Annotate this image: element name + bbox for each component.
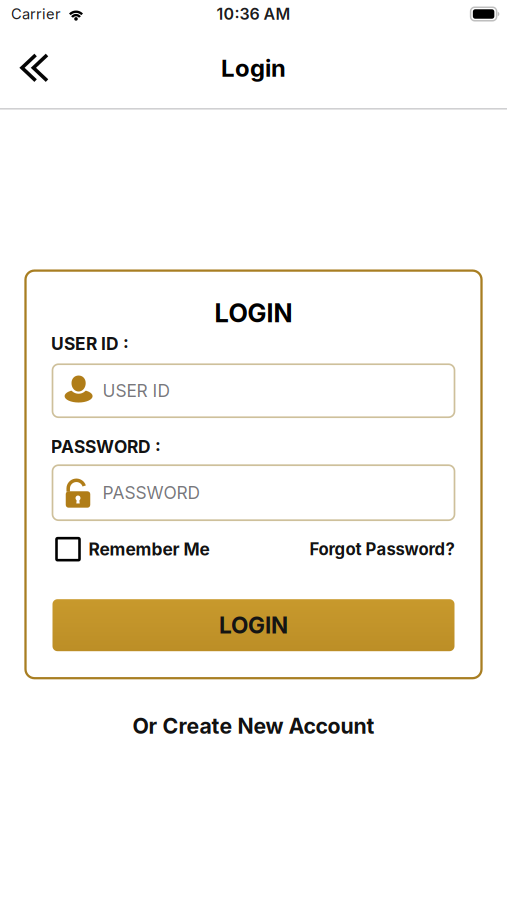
staticText: Carrier [11,5,61,23]
staticText: PASSWORD : [51,436,161,457]
staticText: Login [221,53,286,82]
button[interactable]: Or Create New Account [122,707,384,745]
staticText: LOGIN [219,611,288,639]
button[interactable]: Remember Me [56,538,209,560]
staticText: USER ID : [51,333,129,354]
button[interactable]: LOGIN [52,599,454,651]
staticText: LOGIN [214,298,292,328]
button[interactable]: PASSWORD [52,465,454,520]
staticText: 10:36 AM [216,4,290,24]
staticText: PASSWORD [102,482,200,503]
staticText: Or Create New Account [132,713,374,739]
button[interactable]: Back [0,43,65,93]
button[interactable]: USER ID [52,364,454,417]
staticText: Forgot Password? [309,539,454,559]
staticText: Remember Me [88,539,209,560]
button[interactable]: Forgot Password? [309,539,454,559]
staticText: USER ID [102,380,170,401]
